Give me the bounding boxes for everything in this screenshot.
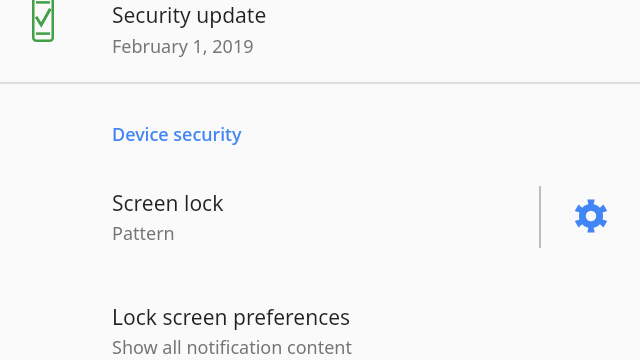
button[interactable]: Security update [0,0,640,82]
staticText: Screen lock [112,189,224,218]
staticText: Device security [112,122,242,147]
staticText: Show all notification content [112,335,352,360]
button[interactable]: Lock screen preferences [0,292,640,360]
staticText: Pattern [112,221,175,246]
staticText: Security update [112,1,267,30]
staticText: February 1, 2019 [112,34,254,59]
button[interactable]: Screen lock settings [556,181,626,251]
button[interactable]: Screen lock [0,178,530,256]
staticText: Lock screen preferences [112,303,351,332]
